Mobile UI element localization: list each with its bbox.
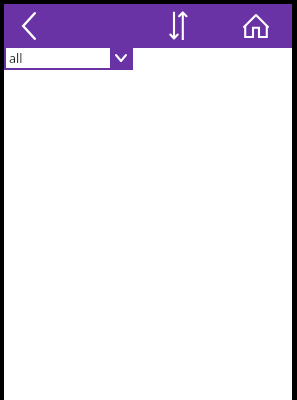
button[interactable]: Sort: [154, 4, 202, 48]
staticText: all: [9, 50, 23, 67]
button[interactable]: Home: [232, 4, 280, 48]
button[interactable]: Back: [4, 4, 53, 48]
button[interactable]: all: [4, 48, 133, 70]
